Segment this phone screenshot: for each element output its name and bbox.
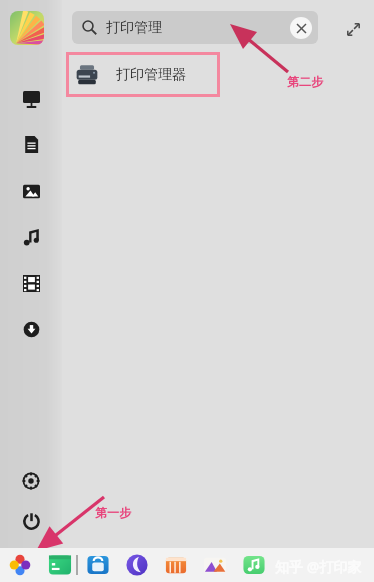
button[interactable]: Store [86, 553, 110, 577]
button[interactable]: Pictures [18, 178, 44, 204]
button[interactable]: Expand [342, 18, 364, 40]
staticText: 第一步 [95, 505, 131, 520]
button[interactable]: Videos [18, 270, 44, 296]
button[interactable]: Downloads [18, 316, 44, 342]
button[interactable]: Settings [18, 468, 44, 494]
button[interactable]: Computer [18, 86, 44, 112]
staticText: 第二步 [287, 74, 323, 89]
button[interactable]: 打印管理器 [66, 52, 220, 97]
button[interactable]: 打印管理 [72, 11, 318, 44]
button[interactable]: Music [242, 553, 266, 577]
button[interactable]: Photos [203, 553, 227, 577]
staticText: 打印管理器 [116, 66, 186, 84]
button[interactable]: Browser [125, 553, 149, 577]
staticText: 打印管理 [106, 19, 162, 37]
button[interactable]: Documents [18, 131, 44, 157]
button[interactable]: Terminal [48, 553, 72, 577]
button[interactable]: Music [18, 224, 44, 250]
button[interactable]: App [10, 11, 44, 45]
button[interactable]: Start [8, 553, 32, 577]
button[interactable]: Clear [290, 17, 312, 39]
button[interactable]: Files [164, 553, 188, 577]
button[interactable]: Power [18, 508, 44, 534]
staticText: 知乎 @打印家 [275, 557, 362, 576]
